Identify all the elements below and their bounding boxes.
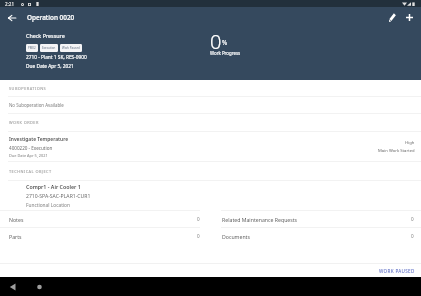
staticText: Compr1 - Air Cooler 1 [26,183,81,190]
staticText: Investigate Temperature [9,136,69,143]
button[interactable]: Back [0,7,24,28]
staticText: 2710-SPA-SAC-PLAR1-CUR1 [26,193,91,200]
staticText: 0 [210,28,222,55]
staticText: PM02 [28,46,36,50]
staticText: Work Paused [62,46,80,50]
staticText: 4000220 - Execution [9,145,53,151]
button[interactable]: WORK PAUSED [371,266,421,276]
staticText: 0 [411,216,414,222]
staticText: 2:21 [5,1,15,7]
staticText: Due Date Apr 5, 2021 [26,63,74,70]
button[interactable]: Documents [221,228,421,244]
staticText: Main Work Started [378,148,415,154]
staticText: % [222,38,228,46]
staticText: Work Progress [210,50,241,56]
staticText: Check Pressure [26,32,65,39]
staticText: Operation 0020 [27,13,75,22]
staticText: Execution [42,46,56,50]
staticText: SUBOPERATIONS [9,86,47,91]
button[interactable]: Edit [384,7,401,28]
staticText: TECHNICAL OBJECT [9,169,52,174]
staticText: Notes [9,216,24,223]
button[interactable]: Work Paused [60,44,82,52]
staticText: High [405,140,415,146]
staticText: 0 [197,233,200,239]
button[interactable]: Notes [0,211,207,227]
staticText: No Suboperation Available [9,102,64,108]
staticText: Functional Location [26,202,70,209]
staticText: Related Maintenance Requests [222,216,298,223]
staticText: 2710 - Plant 1 SK, RES-0900 [26,54,87,61]
staticText: WORK ORDER [9,120,39,125]
button[interactable]: Execution [40,44,58,52]
button[interactable]: Parts [0,228,207,244]
button[interactable]: Related Maintenance Requests [221,211,421,227]
button[interactable]: Investigate Temperature [0,132,421,161]
button[interactable]: Add [401,7,418,28]
button[interactable]: Compr1 - Air Cooler 1 [0,181,421,210]
button[interactable]: PM02 [26,44,38,52]
button[interactable]: No Suboperation Available [0,97,421,113]
staticText: Due Date Apr 5, 2021 [9,153,48,158]
staticText: Parts [9,233,22,240]
staticText: 0 [411,233,414,239]
staticText: 0 [197,216,200,222]
staticText: WORK PAUSED [379,268,415,274]
staticText: Documents [222,233,250,240]
